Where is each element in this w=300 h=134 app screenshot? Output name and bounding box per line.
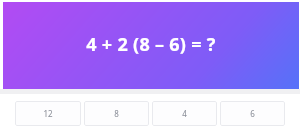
staticText: 8 [114,108,119,119]
button[interactable]: 4 [152,101,217,126]
button[interactable]: 8 [84,101,149,126]
staticText: 12 [43,108,53,119]
staticText: 6 [250,108,255,119]
staticText: 4 [182,108,187,119]
button[interactable]: 6 [220,101,285,126]
staticText: 4 + 2 (8 – 6) = ? [86,32,216,57]
button[interactable]: 12 [15,101,81,126]
